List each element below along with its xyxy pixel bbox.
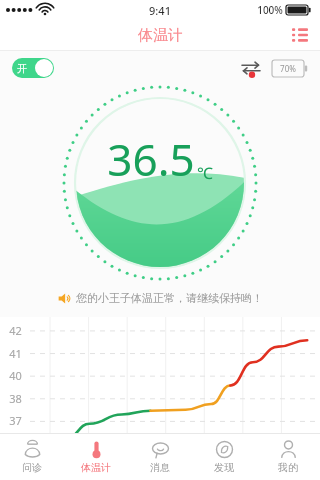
staticText: 100% (257, 3, 283, 17)
button[interactable]: Sync (238, 55, 264, 81)
staticText: 42 (9, 323, 22, 338)
staticText: 70% (280, 63, 296, 74)
staticText: 38 (9, 391, 22, 406)
staticText: 消息 (150, 461, 170, 474)
button[interactable]: Power toggle on (12, 58, 54, 78)
staticText: 体温计 (138, 26, 183, 45)
button[interactable]: Menu (280, 20, 320, 50)
staticText: 您的小王子体温正常，请继续保持哟！ (76, 291, 263, 305)
staticText: 36.5 (107, 129, 195, 189)
button[interactable]: 体温计 (64, 434, 128, 480)
button[interactable]: 发现 (192, 434, 256, 480)
button[interactable]: 我的 (256, 434, 320, 480)
staticText: 40 (9, 368, 22, 383)
button[interactable]: 问诊 (0, 434, 64, 480)
staticText: 我的 (278, 461, 298, 474)
staticText: 37 (9, 413, 22, 428)
staticText: 9:41 (149, 3, 171, 18)
staticText: 发现 (214, 461, 234, 474)
staticText: 开 (17, 62, 27, 75)
staticText: ℃ (197, 162, 213, 184)
staticText: 问诊 (22, 461, 42, 474)
staticText: 体温计 (81, 461, 111, 474)
button[interactable]: 消息 (128, 434, 192, 480)
staticText: 41 (9, 346, 22, 361)
